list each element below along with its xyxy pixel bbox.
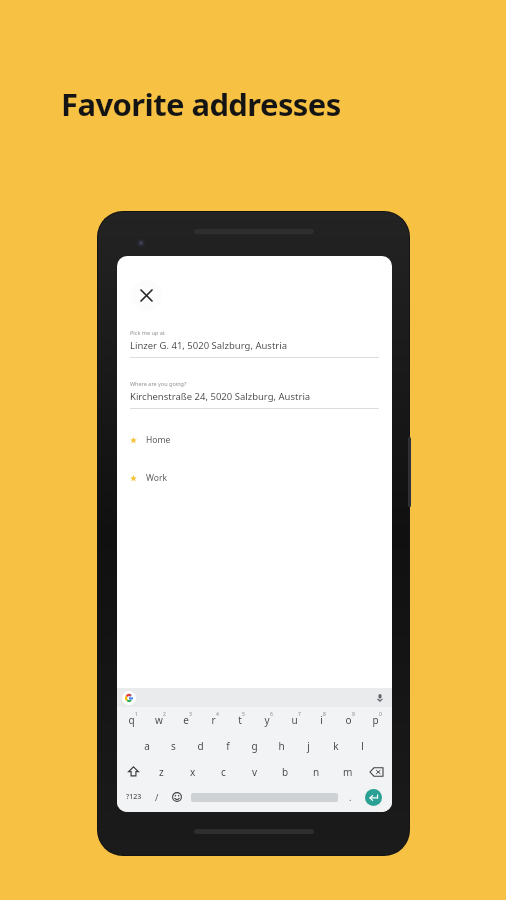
- button[interactable]: t: [228, 713, 255, 727]
- staticText: e: [183, 713, 189, 727]
- staticText: b: [282, 765, 289, 779]
- button[interactable]: Where are you going?: [130, 380, 379, 409]
- button[interactable]: Emoji: [167, 792, 187, 802]
- staticText: c: [221, 765, 226, 779]
- staticText: Kirchenstraße 24, 5020 Salzburg, Austria: [130, 390, 311, 403]
- staticText: 2: [163, 711, 166, 718]
- button[interactable]: e: [174, 713, 201, 727]
- button[interactable]: d: [187, 739, 214, 753]
- staticText: v: [252, 765, 258, 779]
- button[interactable]: o: [336, 713, 363, 727]
- button[interactable]: h: [268, 739, 295, 753]
- staticText: q: [128, 713, 135, 727]
- staticText: i: [320, 713, 323, 727]
- staticText: k: [333, 739, 339, 753]
- button[interactable]: q: [119, 713, 147, 727]
- button[interactable]: i: [309, 713, 336, 727]
- button[interactable]: p: [363, 713, 390, 727]
- button[interactable]: Home: [130, 434, 379, 446]
- button[interactable]: b: [270, 765, 301, 779]
- staticText: z: [159, 765, 164, 779]
- button[interactable]: l: [349, 739, 376, 753]
- staticText: m: [343, 765, 353, 779]
- staticText: Home: [146, 434, 171, 446]
- button[interactable]: Google: [122, 691, 136, 705]
- button[interactable]: n: [301, 765, 332, 779]
- staticText: d: [197, 739, 204, 753]
- button[interactable]: g: [241, 739, 268, 753]
- staticText: 9: [352, 711, 355, 718]
- button[interactable]: Enter: [358, 788, 388, 806]
- staticText: t: [238, 713, 242, 727]
- button[interactable]: Work: [130, 472, 379, 484]
- staticText: Where are you going?: [130, 380, 187, 387]
- button[interactable]: w: [147, 713, 174, 727]
- button[interactable]: m: [332, 765, 363, 779]
- button[interactable]: u: [282, 713, 309, 727]
- button[interactable]: c: [208, 765, 239, 779]
- staticText: 8: [323, 711, 326, 718]
- button[interactable]: Voice input: [374, 692, 386, 704]
- staticText: h: [278, 739, 285, 753]
- button[interactable]: .: [342, 791, 358, 803]
- button[interactable]: Close: [131, 280, 162, 311]
- staticText: 0: [379, 711, 382, 718]
- button[interactable]: s: [160, 739, 187, 753]
- staticText: Favorite addresses: [61, 83, 341, 125]
- button[interactable]: /: [147, 791, 167, 803]
- staticText: Linzer G. 41, 5020 Salzburg, Austria: [130, 339, 288, 352]
- button[interactable]: Shift: [120, 766, 146, 777]
- staticText: /: [155, 791, 159, 803]
- staticText: n: [313, 765, 320, 779]
- staticText: .: [349, 791, 352, 803]
- staticText: j: [307, 739, 310, 753]
- button[interactable]: Pick me up at: [130, 329, 379, 358]
- button[interactable]: f: [214, 739, 241, 753]
- staticText: f: [226, 739, 230, 753]
- button[interactable]: r: [201, 713, 228, 727]
- staticText: 3: [189, 711, 192, 718]
- staticText: 5: [242, 711, 245, 718]
- staticText: r: [211, 713, 216, 727]
- staticText: Work: [146, 472, 167, 484]
- staticText: p: [372, 713, 379, 727]
- staticText: l: [361, 739, 364, 753]
- staticText: 7: [298, 711, 301, 718]
- staticText: a: [144, 739, 150, 753]
- staticText: Pick me up at: [130, 329, 165, 336]
- staticText: y: [264, 713, 270, 727]
- button[interactable]: ?123: [121, 792, 147, 802]
- button[interactable]: y: [255, 713, 282, 727]
- button[interactable]: a: [133, 739, 160, 753]
- button[interactable]: Backspace: [363, 767, 389, 777]
- button[interactable]: x: [177, 765, 208, 779]
- staticText: g: [251, 739, 258, 753]
- staticText: 6: [270, 711, 273, 718]
- staticText: u: [291, 713, 298, 727]
- staticText: 4: [216, 711, 219, 718]
- button[interactable]: k: [322, 739, 349, 753]
- button[interactable]: v: [239, 765, 270, 779]
- staticText: 1: [135, 711, 138, 718]
- button[interactable]: z: [146, 765, 177, 779]
- staticText: x: [190, 765, 196, 779]
- button[interactable]: j: [295, 739, 322, 753]
- staticText: w: [155, 713, 163, 727]
- staticText: o: [345, 713, 352, 727]
- staticText: ?123: [126, 792, 142, 802]
- staticText: s: [171, 739, 176, 753]
